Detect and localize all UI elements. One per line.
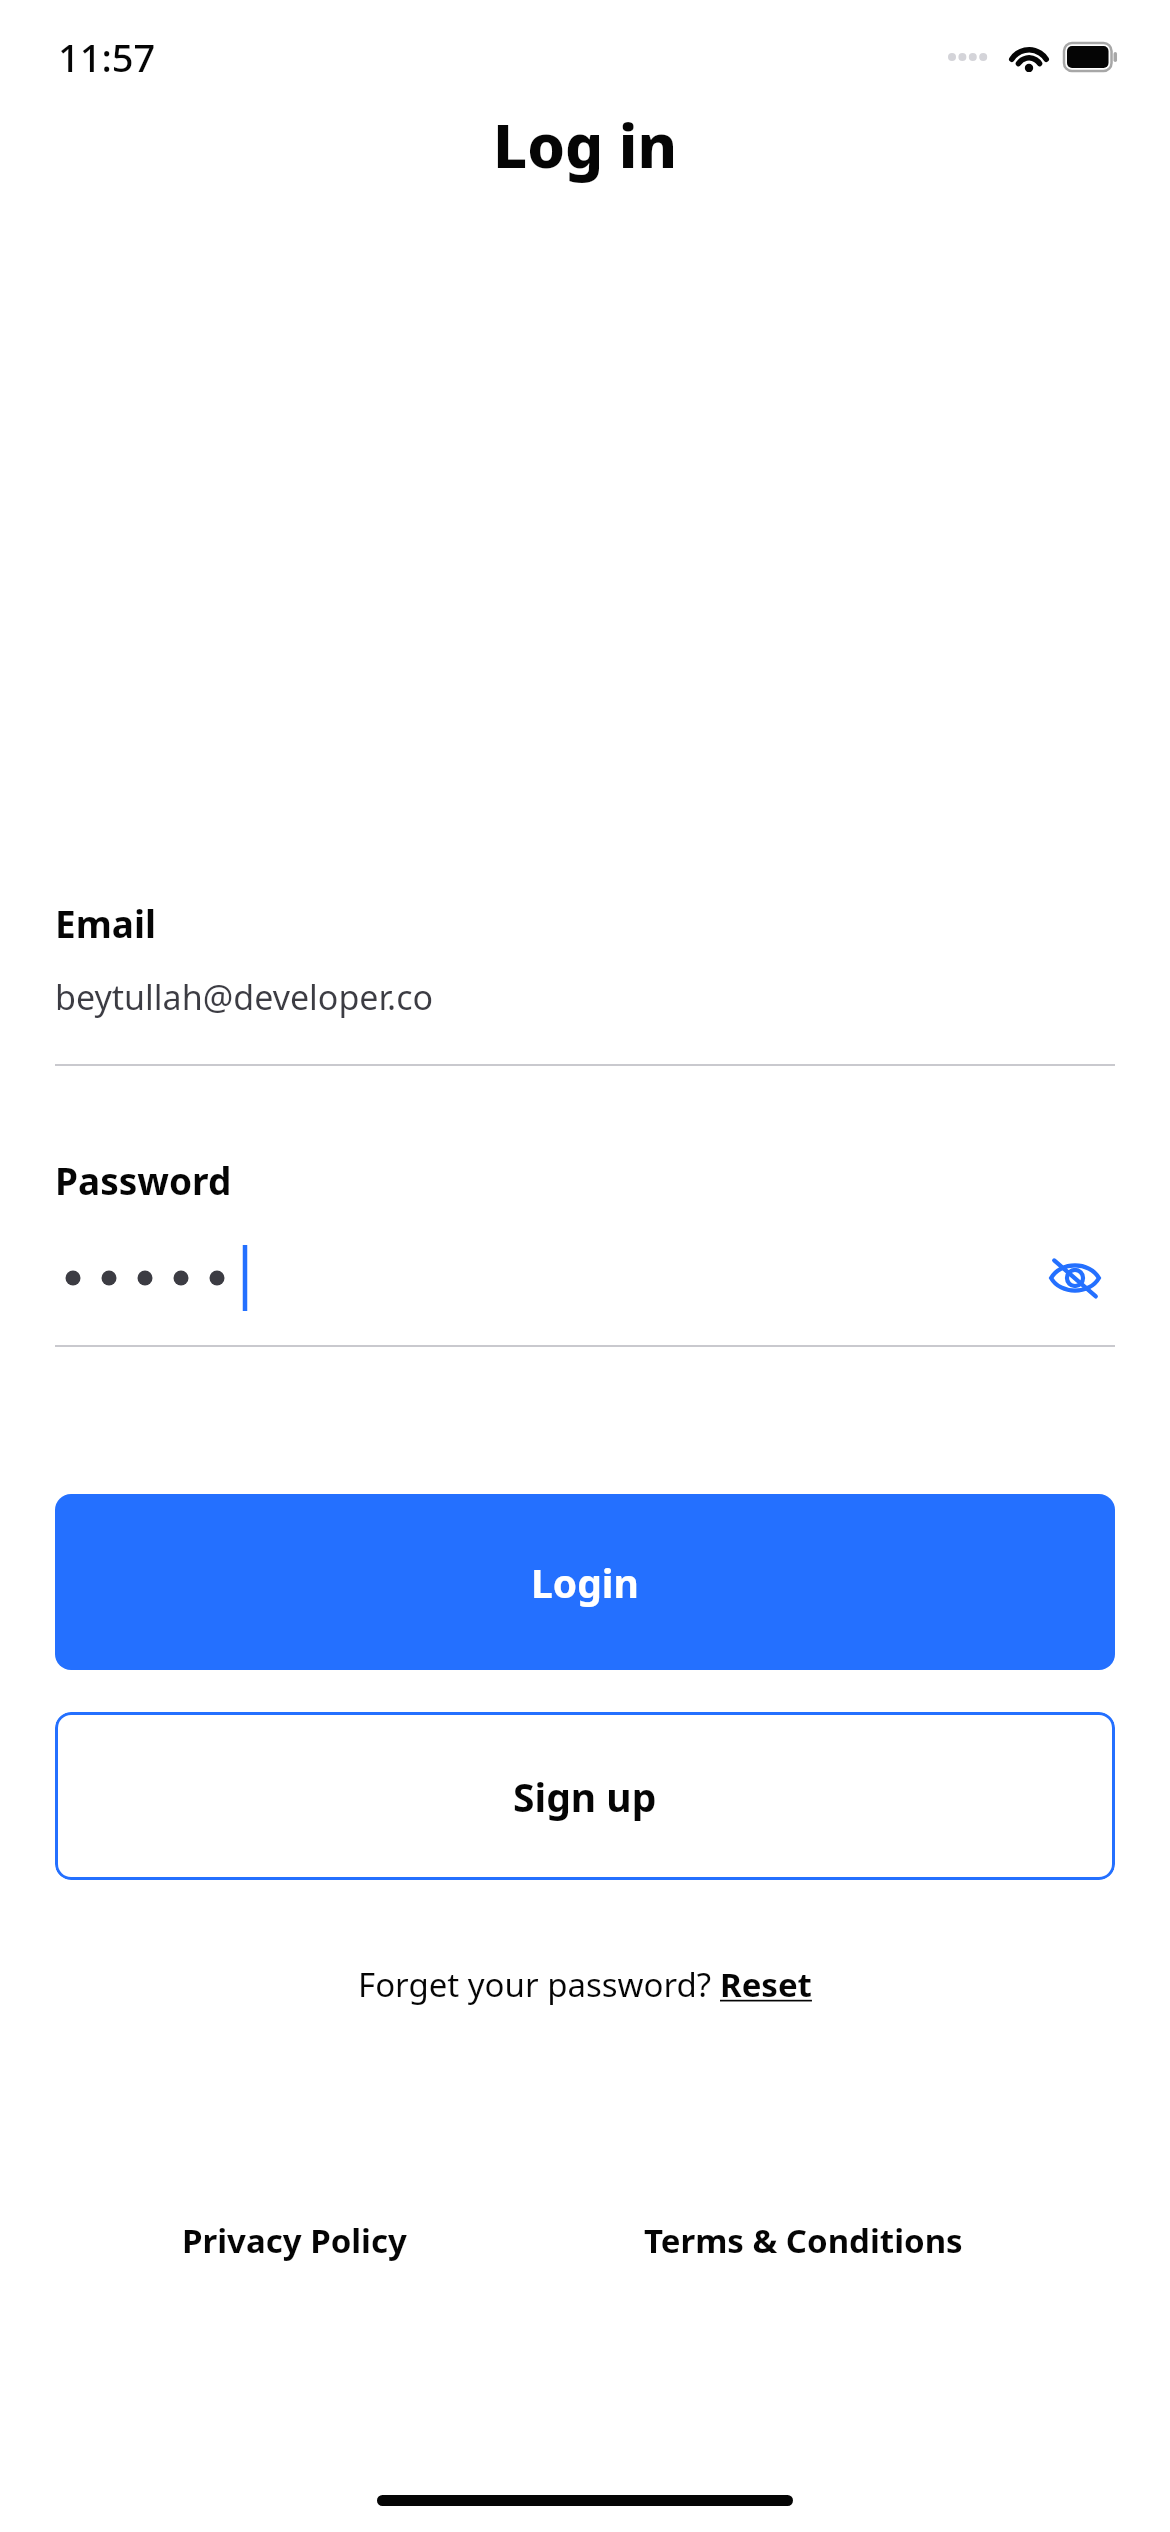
staticText: Privacy Policy — [182, 2218, 407, 2263]
button[interactable]: Show password — [1035, 1238, 1115, 1318]
staticText: Sign up — [513, 1770, 657, 1823]
staticText: Email — [55, 898, 157, 948]
button[interactable]: Reset — [720, 1962, 812, 2007]
staticText: Log in — [493, 104, 678, 186]
staticText: beytullah@developer.co — [55, 974, 434, 1020]
staticText: Password — [55, 1155, 232, 1205]
button[interactable]: Privacy Policy — [170, 2206, 419, 2275]
staticText: 11:57 — [58, 31, 156, 83]
button[interactable]: Terms & Conditions — [632, 2206, 975, 2275]
staticText: Terms & Conditions — [644, 2218, 963, 2263]
button[interactable]: Login — [55, 1494, 1115, 1670]
staticText: Reset — [720, 1962, 812, 2007]
staticText: Login — [531, 1556, 639, 1609]
staticText: Forget your password? — [358, 1962, 720, 2007]
button[interactable]: Sign up — [55, 1712, 1115, 1880]
